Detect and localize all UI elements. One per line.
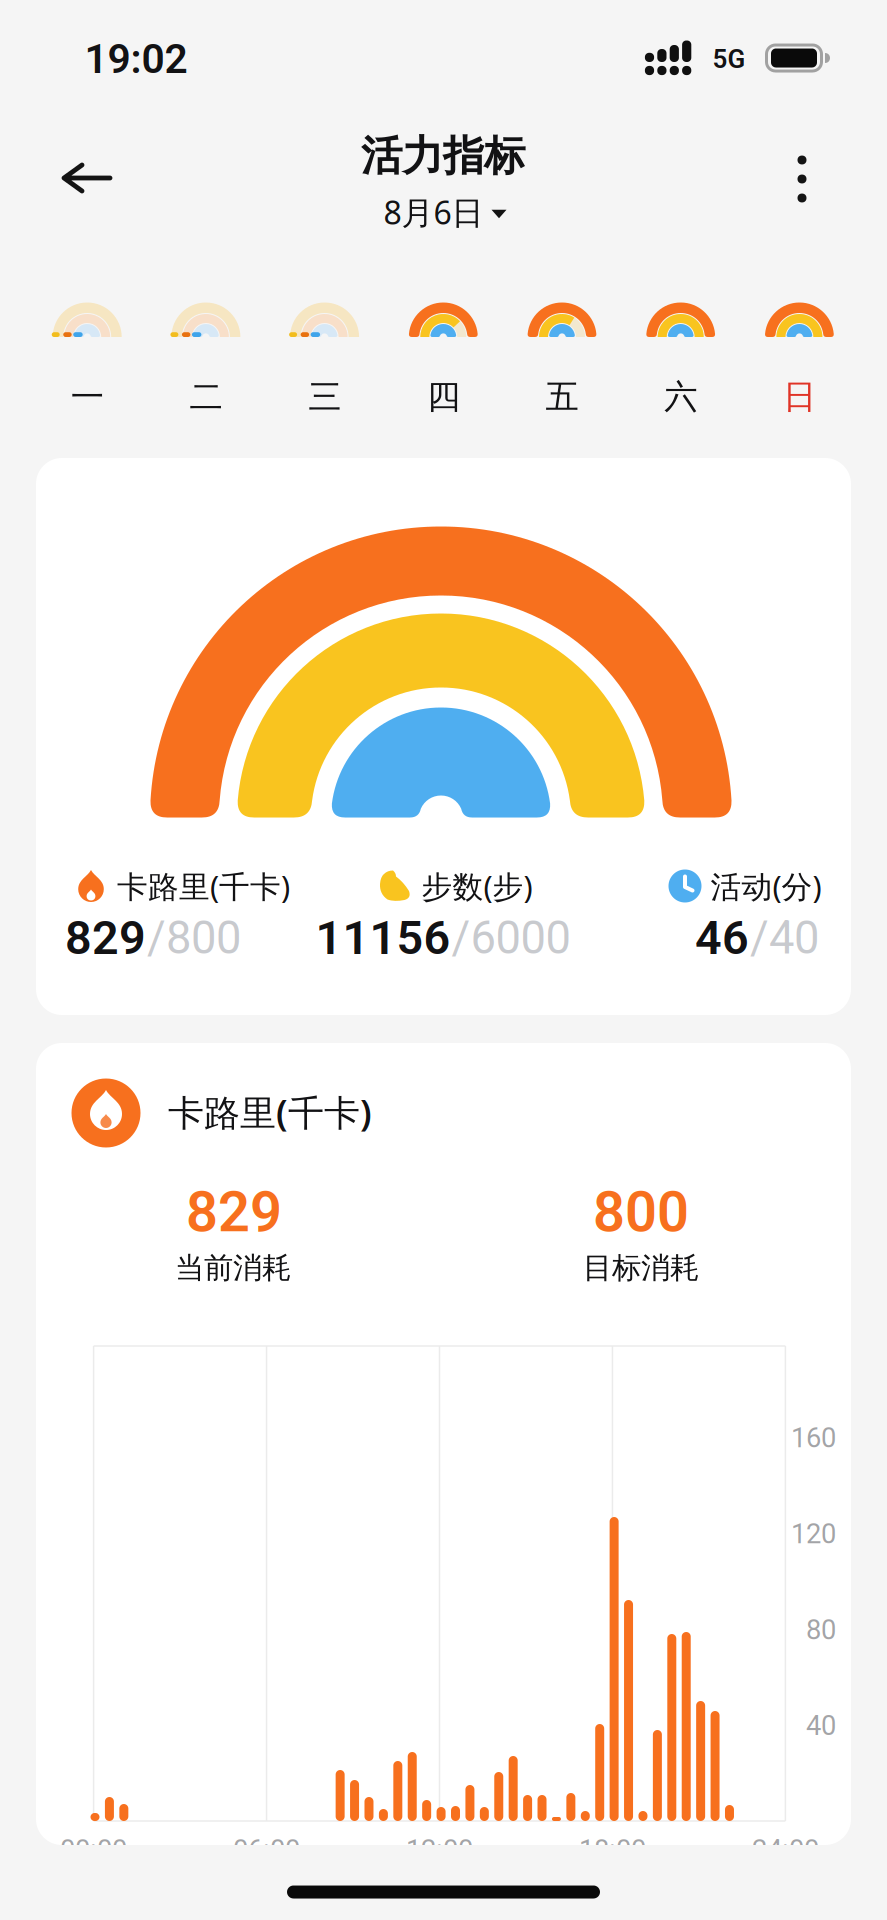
staticText: /40 [750, 911, 819, 964]
button[interactable]: 二 [147, 238, 265, 448]
button[interactable]: 三 [265, 238, 384, 448]
staticText: 二 [189, 376, 222, 417]
staticText: 24:00 [752, 1834, 819, 1866]
button[interactable]: 一 [28, 238, 147, 448]
staticText: 8月6日 [383, 191, 483, 233]
button[interactable]: More [785, 143, 818, 214]
staticText: 卡路里(千卡) [168, 1088, 372, 1136]
staticText: 19:02 [84, 35, 187, 83]
staticText: 160 [791, 1422, 836, 1454]
button[interactable]: 四 [384, 238, 503, 448]
staticText: 活力指标 [361, 131, 525, 181]
staticText: 当前消耗 [175, 1250, 291, 1286]
button[interactable]: 8月6日 [383, 191, 506, 233]
staticText: 目标消耗 [583, 1250, 699, 1286]
staticText: 00:00 [60, 1834, 127, 1866]
staticText: 六 [664, 376, 697, 417]
staticText: 40 [806, 1710, 836, 1742]
staticText: 五 [546, 376, 579, 417]
staticText: 活动(分) [710, 866, 821, 906]
staticText: 12:00 [406, 1834, 473, 1866]
button[interactable]: 五 [503, 238, 621, 448]
staticText: /800 [147, 911, 241, 964]
staticText: 46 [695, 911, 749, 965]
staticText: 5G [712, 44, 745, 74]
staticText: 卡路里(千卡) [117, 866, 290, 906]
staticText: 11156 [315, 911, 450, 965]
staticText: 18:00 [579, 1834, 646, 1866]
button[interactable]: 六 [621, 238, 740, 448]
staticText: 步数(步) [421, 866, 532, 906]
button[interactable]: Back [47, 148, 127, 208]
staticText: 829 [65, 911, 146, 965]
staticText: 829 [186, 1179, 282, 1245]
staticText: 三 [308, 376, 341, 417]
staticText: 120 [791, 1518, 836, 1550]
button[interactable]: 日 [740, 238, 859, 448]
staticText: 06:00 [233, 1834, 300, 1866]
staticText: 四 [427, 376, 460, 417]
staticText: /6000 [451, 911, 570, 964]
staticText: 800 [593, 1179, 689, 1245]
staticText: 80 [806, 1614, 836, 1646]
staticText: 一 [71, 376, 104, 417]
staticText: 日 [783, 376, 816, 417]
